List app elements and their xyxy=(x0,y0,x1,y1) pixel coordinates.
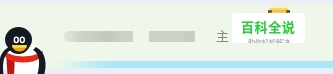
other: QQ avatar xyxy=(0,26,48,74)
staticText: 主 xyxy=(216,26,230,45)
staticText: 百科全说 xyxy=(241,17,296,36)
button[interactable]: 百科全说 xyxy=(232,13,305,43)
staticText: 助你轻松解决 xyxy=(248,37,290,43)
